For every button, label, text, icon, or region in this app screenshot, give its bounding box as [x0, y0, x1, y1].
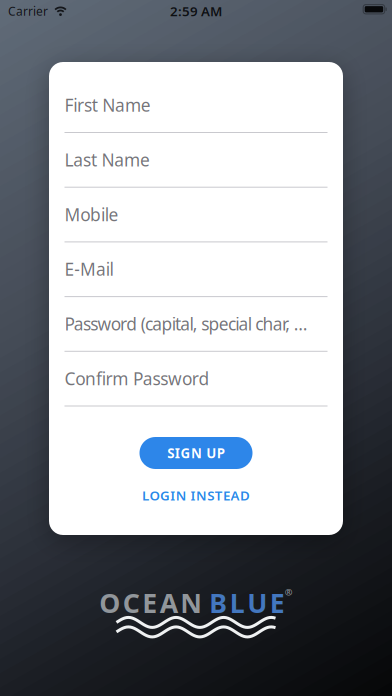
staticText: Password (capital, special char, … [64, 312, 308, 335]
button[interactable]: Confirm Password [64, 366, 327, 406]
button[interactable]: SIGN UP [139, 437, 252, 469]
staticText: 2:59 AM [170, 2, 222, 20]
staticText: First Name [64, 93, 151, 116]
button[interactable]: LOGIN INSTEAD [142, 486, 250, 504]
staticText: E-Mail [64, 258, 113, 281]
staticText: BLUE [209, 585, 285, 620]
staticText: ® [285, 586, 293, 598]
staticText: Confirm Password [64, 367, 209, 390]
button[interactable]: Last Name [64, 147, 327, 188]
button[interactable]: Mobile [64, 202, 327, 242]
button[interactable]: E-Mail [64, 257, 327, 297]
button[interactable]: First Name [64, 92, 327, 133]
staticText: LOGIN INSTEAD [142, 486, 250, 504]
staticText: OCEAN [99, 585, 202, 620]
staticText: Mobile [64, 203, 118, 226]
staticText: SIGN UP [167, 444, 225, 462]
button[interactable]: Password (capital, special char, … [64, 311, 327, 352]
staticText: Last Name [64, 148, 150, 171]
staticText: Carrier [8, 3, 48, 19]
